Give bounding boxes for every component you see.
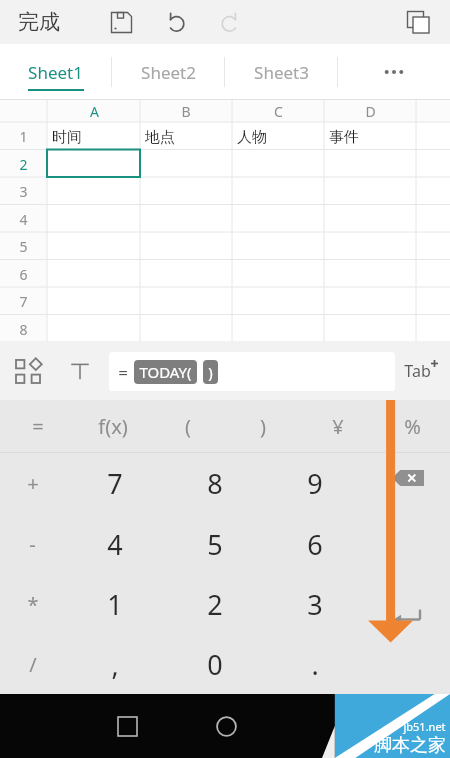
button[interactable]: Recent apps bbox=[103, 702, 151, 750]
button[interactable]: Enter bbox=[365, 574, 450, 634]
button[interactable]: + bbox=[0, 453, 65, 514]
button[interactable]: A bbox=[74, 101, 114, 122]
button[interactable]: . bbox=[265, 634, 365, 694]
button[interactable]: ) bbox=[225, 400, 300, 452]
staticText: 1 bbox=[19, 127, 28, 146]
button[interactable]: Backspace bbox=[365, 453, 450, 514]
staticText: + bbox=[27, 470, 39, 497]
staticText: , bbox=[111, 646, 119, 683]
button[interactable]: f(x) bbox=[75, 400, 150, 452]
button[interactable]: 1 bbox=[65, 574, 165, 634]
button[interactable]: 5 bbox=[165, 514, 265, 574]
staticText: C bbox=[274, 102, 283, 121]
button[interactable]: 4 bbox=[65, 514, 165, 574]
staticText: 8 bbox=[19, 320, 28, 339]
staticText: 1 bbox=[107, 586, 123, 623]
button[interactable]: Home bbox=[202, 702, 250, 750]
button[interactable]: 4 bbox=[0, 209, 47, 229]
button[interactable]: ( bbox=[150, 400, 225, 452]
staticText: 5 bbox=[19, 237, 28, 256]
button[interactable]: 人物 bbox=[237, 126, 319, 148]
button[interactable]: Text format bbox=[58, 349, 102, 393]
button[interactable]: More options bbox=[338, 44, 450, 100]
button[interactable]: 地点 bbox=[145, 126, 227, 148]
button[interactable]: 时间 bbox=[52, 126, 135, 148]
staticText: 5 bbox=[207, 526, 223, 563]
button[interactable]: Sheet2 bbox=[112, 44, 224, 100]
button[interactable]: 2 bbox=[0, 154, 47, 174]
staticText: Sheet1 bbox=[28, 61, 83, 84]
staticText: Tab bbox=[404, 360, 431, 382]
staticText: 7 bbox=[107, 465, 123, 502]
staticText: 6 bbox=[307, 526, 323, 563]
button[interactable]: ¥ bbox=[300, 400, 375, 452]
staticText: 事件 bbox=[329, 128, 359, 147]
staticText: ) bbox=[260, 413, 266, 440]
staticText: 完成 bbox=[18, 9, 60, 35]
button[interactable]: 事件 bbox=[329, 126, 411, 148]
button[interactable]: Sheet list bbox=[398, 2, 438, 42]
staticText: Sheet3 bbox=[254, 61, 309, 84]
staticText: = bbox=[118, 361, 128, 384]
button[interactable]: Save bbox=[100, 1, 142, 43]
staticText: B bbox=[181, 102, 191, 121]
staticText: 2 bbox=[207, 586, 223, 623]
staticText: D bbox=[365, 102, 376, 121]
button[interactable]: Undo bbox=[155, 1, 197, 43]
staticText: = bbox=[32, 413, 44, 440]
staticText: * bbox=[27, 591, 39, 618]
button[interactable]: % bbox=[375, 400, 450, 452]
staticText: A bbox=[90, 102, 99, 121]
staticText: / bbox=[29, 651, 37, 678]
staticText: 6 bbox=[19, 265, 28, 284]
button[interactable]: 6 bbox=[265, 514, 365, 574]
button[interactable]: Sheet3 bbox=[225, 44, 337, 100]
staticText: . bbox=[311, 646, 319, 683]
button[interactable]: Sheet1 bbox=[0, 44, 111, 100]
staticText: ( bbox=[185, 413, 191, 440]
button[interactable]: Tab bbox=[396, 349, 446, 393]
staticText: % bbox=[404, 413, 421, 440]
button[interactable]: 3 bbox=[265, 574, 365, 634]
button[interactable]: / bbox=[0, 634, 65, 694]
button[interactable]: 2 bbox=[165, 574, 265, 634]
button[interactable]: Redo bbox=[208, 1, 250, 43]
button[interactable]: - bbox=[0, 514, 65, 574]
staticText: 3 bbox=[307, 586, 323, 623]
button[interactable]: D bbox=[350, 101, 390, 122]
button[interactable]: 完成 bbox=[12, 5, 66, 39]
staticText: ¥ bbox=[332, 413, 344, 440]
button[interactable]: 7 bbox=[65, 453, 165, 514]
button[interactable]: 6 bbox=[0, 264, 47, 284]
button[interactable]: 1 bbox=[0, 126, 47, 146]
button[interactable]: 3 bbox=[0, 181, 47, 201]
staticText: TODAY( bbox=[139, 362, 192, 382]
staticText: 9 bbox=[307, 465, 323, 502]
button[interactable]: * bbox=[0, 574, 65, 634]
button[interactable]: 7 bbox=[0, 291, 47, 311]
button[interactable]: 8 bbox=[0, 319, 47, 339]
staticText: 地点 bbox=[145, 128, 175, 147]
staticText: Sheet2 bbox=[141, 61, 196, 84]
button[interactable]: 0 bbox=[165, 634, 265, 694]
staticText: 脚本之家 bbox=[374, 734, 446, 757]
staticText: ) bbox=[208, 362, 213, 382]
button[interactable]: 5 bbox=[0, 236, 47, 256]
button[interactable]: 9 bbox=[265, 453, 365, 514]
staticText: 4 bbox=[107, 526, 123, 563]
button[interactable]: = bbox=[0, 400, 75, 452]
staticText: jb51.net bbox=[403, 719, 446, 734]
button[interactable]: 8 bbox=[165, 453, 265, 514]
button[interactable]: Insert object bbox=[6, 349, 50, 393]
staticText: f(x) bbox=[98, 413, 128, 440]
button[interactable]: , bbox=[65, 634, 165, 694]
staticText: 2 bbox=[19, 155, 28, 174]
button[interactable]: = bbox=[109, 352, 395, 391]
button[interactable]: C bbox=[258, 101, 298, 122]
button[interactable]: B bbox=[166, 101, 206, 122]
staticText: 人物 bbox=[237, 128, 267, 147]
staticText: 3 bbox=[19, 182, 28, 201]
staticText: - bbox=[29, 531, 36, 558]
staticText: 0 bbox=[207, 646, 223, 683]
staticText: 8 bbox=[207, 465, 223, 502]
